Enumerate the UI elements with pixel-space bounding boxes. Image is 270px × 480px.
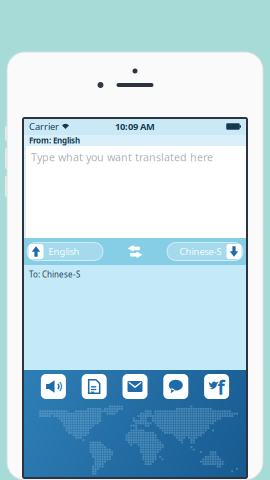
button[interactable]: Copy text <box>74 374 115 399</box>
button[interactable]: Email <box>115 374 155 399</box>
button[interactable]: English <box>27 242 103 260</box>
staticText: f <box>218 375 225 400</box>
staticText: 10:09 AM <box>115 120 155 133</box>
staticText: Chinese-S <box>179 245 221 258</box>
staticText: To: Chinese-S <box>29 269 80 280</box>
button[interactable]: Chat <box>155 374 196 399</box>
button[interactable]: Speak translation <box>33 374 74 399</box>
button[interactable]: Chinese-S <box>167 242 243 260</box>
button[interactable]: Swap languages <box>124 241 145 261</box>
staticText: Type what you want translated here <box>31 150 213 164</box>
staticText: Carrier <box>29 120 59 133</box>
staticText: From: English <box>29 135 80 146</box>
button[interactable]: Share on social <box>196 374 237 399</box>
staticText: English <box>48 245 79 258</box>
